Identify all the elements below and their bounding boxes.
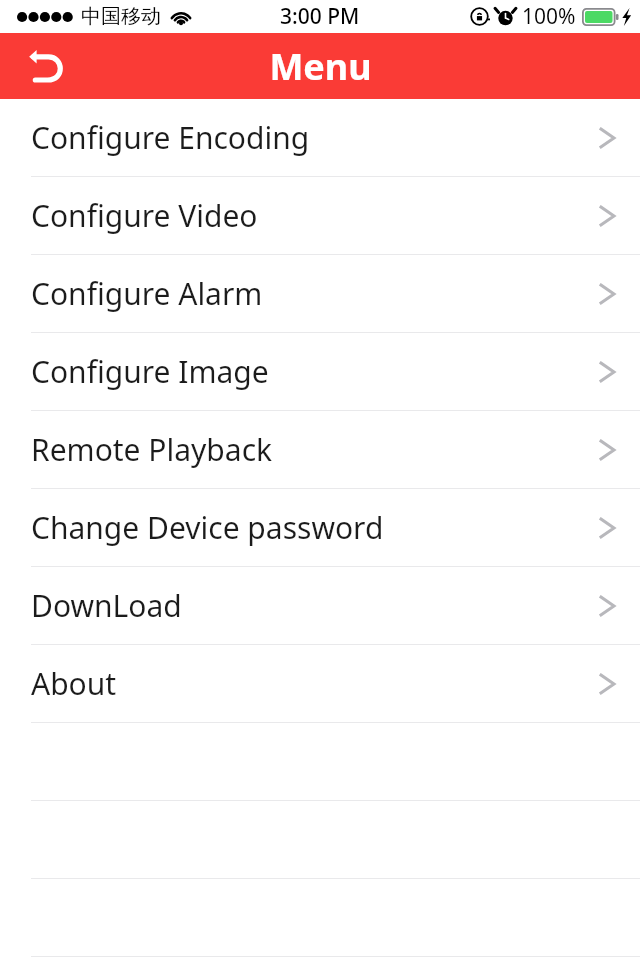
button[interactable]: DownLoad: [0, 567, 640, 644]
staticText: Configure Video: [31, 195, 258, 236]
button[interactable]: Change Device password: [0, 489, 640, 566]
staticText: About: [31, 663, 117, 704]
button[interactable]: About: [0, 645, 640, 722]
staticText: Menu: [269, 42, 372, 91]
button[interactable]: Configure Image: [0, 333, 640, 410]
button[interactable]: Back: [14, 35, 76, 97]
staticText: Change Device password: [31, 507, 384, 548]
staticText: 100%: [522, 2, 576, 31]
staticText: 中国移动: [81, 4, 161, 29]
staticText: Configure Encoding: [31, 117, 310, 158]
staticText: 3:00 PM: [280, 2, 360, 31]
staticText: Configure Image: [31, 351, 269, 392]
staticText: Remote Playback: [31, 429, 273, 470]
button[interactable]: Configure Video: [0, 177, 640, 254]
staticText: Configure Alarm: [31, 273, 263, 314]
staticText: DownLoad: [31, 585, 182, 626]
button[interactable]: Remote Playback: [0, 411, 640, 488]
button[interactable]: Configure Alarm: [0, 255, 640, 332]
button[interactable]: Configure Encoding: [0, 99, 640, 176]
